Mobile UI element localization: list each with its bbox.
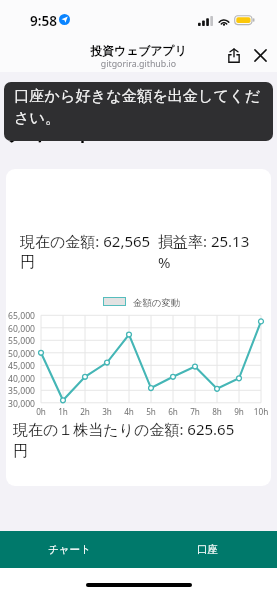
staticText: 口座から好きな金額を出金してください。 bbox=[14, 86, 266, 128]
staticText: 現在の金額: 62,565 円 bbox=[20, 231, 151, 271]
staticText: 2h bbox=[75, 406, 95, 417]
button[interactable]: チャート bbox=[0, 531, 138, 568]
staticText: 60,000 bbox=[6, 323, 35, 335]
staticText: 5h bbox=[141, 406, 161, 417]
button[interactable]: Share bbox=[221, 38, 246, 72]
staticText: 45,000 bbox=[6, 360, 35, 372]
staticText: チャート bbox=[48, 543, 91, 556]
staticText: 1h bbox=[53, 406, 73, 417]
button[interactable]: Close bbox=[248, 38, 273, 72]
staticText: 30,000 bbox=[6, 398, 35, 410]
staticText: 50,000 bbox=[6, 348, 35, 360]
staticText: チャート bbox=[6, 119, 96, 147]
staticText: 40,000 bbox=[6, 373, 35, 385]
staticText: 0h bbox=[31, 406, 51, 417]
staticText: 55,000 bbox=[6, 335, 35, 347]
staticText: 損益率: 25.13 % bbox=[158, 231, 250, 272]
staticText: 投資ウェブアプリ bbox=[0, 44, 277, 59]
staticText: 9:58 bbox=[30, 12, 57, 30]
staticText: 9h bbox=[229, 406, 249, 417]
button[interactable]: 口座から好きな金額を出金してください。 bbox=[4, 82, 273, 141]
staticText: 3h bbox=[97, 406, 117, 417]
staticText: 7h bbox=[185, 406, 205, 417]
staticText: gitgorira.github.io bbox=[0, 58, 277, 70]
staticText: 4h bbox=[119, 406, 139, 417]
button[interactable]: 口座 bbox=[138, 531, 277, 568]
staticText: 口座 bbox=[197, 543, 218, 556]
staticText: 10h bbox=[251, 406, 271, 417]
staticText: 8h bbox=[207, 406, 227, 417]
staticText: 現在の１株当たりの金額: 625.65 円 bbox=[13, 419, 235, 461]
staticText: 6h bbox=[163, 406, 183, 417]
staticText: 35,000 bbox=[6, 385, 35, 397]
staticText: 金額の変動 bbox=[133, 297, 181, 309]
staticText: 65,000 bbox=[6, 310, 35, 322]
